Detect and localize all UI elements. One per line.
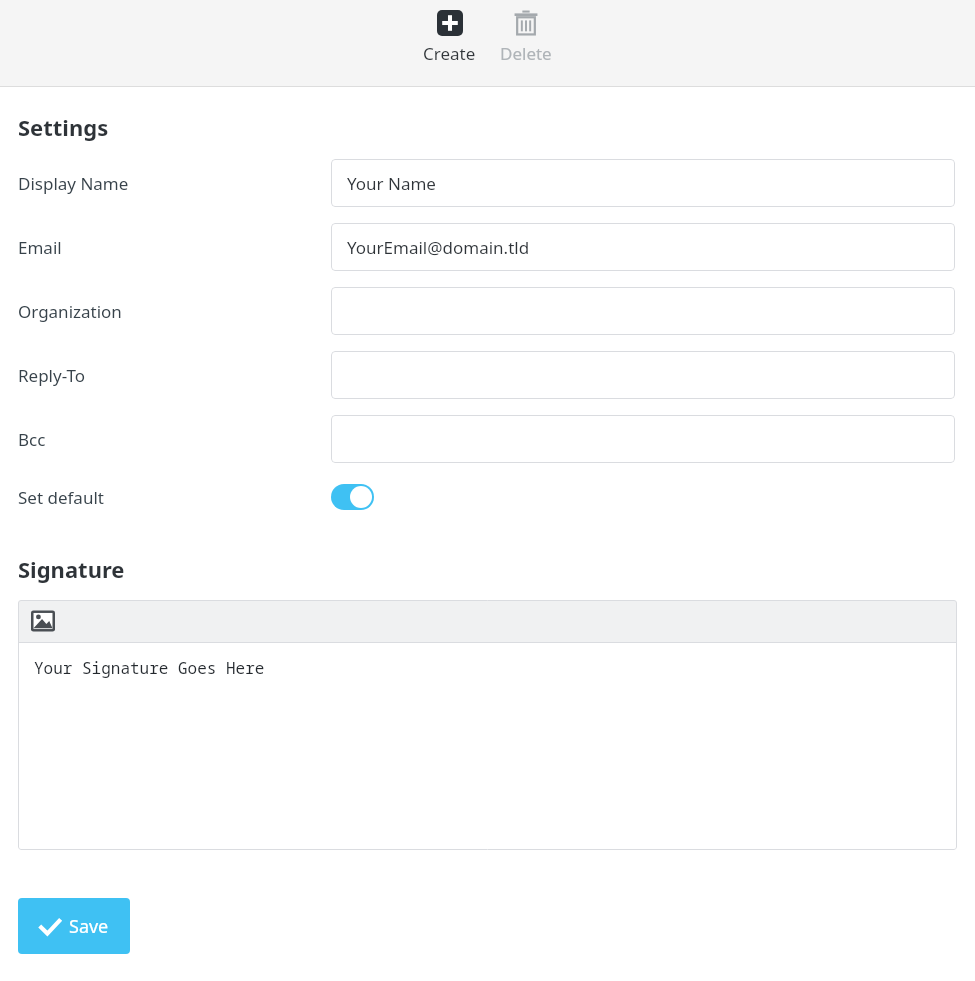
- button[interactable]: Your Name: [331, 159, 955, 207]
- button[interactable]: YourEmail@domain.tld: [331, 223, 955, 271]
- button[interactable]: [331, 415, 955, 463]
- staticText: Reply-To: [18, 364, 86, 387]
- staticText: YourEmail@domain.tld: [347, 236, 530, 259]
- staticText: Display Name: [18, 172, 129, 195]
- staticText: Your Name: [347, 172, 436, 195]
- button[interactable]: Set default toggle, on: [331, 484, 374, 510]
- button[interactable]: [331, 287, 955, 335]
- staticText: Organization: [18, 300, 122, 323]
- button[interactable]: Your Signature Goes Here: [18, 643, 957, 850]
- button[interactable]: [331, 351, 955, 399]
- staticText: Your Signature Goes Here: [34, 657, 265, 679]
- staticText: Delete: [500, 42, 552, 65]
- staticText: Bcc: [18, 428, 46, 451]
- button[interactable]: Insert image: [30, 608, 56, 634]
- button[interactable]: Create: [411, 0, 488, 75]
- staticText: Create: [423, 42, 476, 65]
- button[interactable]: Save: [18, 898, 130, 954]
- staticText: Set default: [18, 486, 104, 509]
- staticText: Signature: [18, 554, 125, 584]
- button[interactable]: Delete: [488, 0, 564, 75]
- staticText: Save: [69, 914, 109, 939]
- staticText: Settings: [18, 112, 109, 142]
- staticText: Email: [18, 236, 62, 259]
